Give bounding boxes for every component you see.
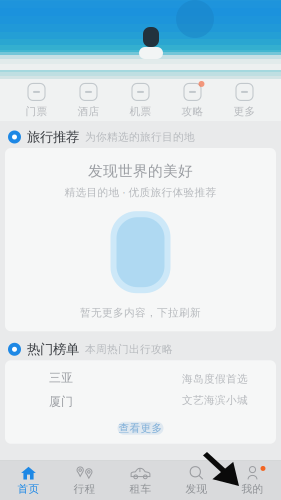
staticText: 海岛度假首选	[182, 372, 248, 385]
staticText: 暂无更多内容，下拉刷新	[80, 306, 201, 319]
staticText: 门票	[25, 105, 47, 118]
staticText: 攻略	[181, 105, 203, 118]
staticText: 酒店	[77, 105, 99, 118]
staticText: 本周热门出行攻略	[85, 343, 173, 356]
button[interactable]: 行程	[56, 464, 112, 496]
button[interactable]: 租车	[112, 464, 168, 496]
staticText: 查看更多	[118, 422, 162, 435]
button[interactable]: 门票	[10, 82, 62, 118]
staticText: 发现	[185, 482, 207, 495]
staticText: 行程	[73, 482, 95, 495]
staticText: 更多	[233, 105, 255, 118]
staticText: 机票	[129, 105, 151, 118]
button[interactable]: 查看更多	[117, 422, 163, 435]
staticText: 厦门	[49, 394, 73, 409]
staticText: 旅行推荐	[27, 129, 79, 145]
staticText: 首页	[17, 482, 39, 495]
button[interactable]: 机票	[114, 82, 166, 118]
staticText: 热门榜单	[27, 341, 79, 357]
button[interactable]: 我的	[224, 464, 280, 496]
button[interactable]: 发现世界的美好	[5, 148, 276, 331]
button[interactable]: 攻略	[166, 82, 218, 118]
staticText: 我的	[241, 482, 263, 495]
staticText: 三亚	[49, 370, 73, 385]
button[interactable]: 更多	[218, 82, 270, 118]
staticText: 文艺海滨小城	[182, 393, 248, 407]
staticText: 发现世界的美好	[88, 162, 193, 180]
button[interactable]: 酒店	[62, 82, 114, 118]
button[interactable]: 发现	[168, 464, 224, 496]
button[interactable]: 首页	[0, 464, 56, 496]
staticText: 精选目的地 · 优质旅行体验推荐	[64, 185, 216, 199]
staticText: 租车	[129, 482, 151, 495]
staticText: 为你精选的旅行目的地	[85, 130, 195, 143]
